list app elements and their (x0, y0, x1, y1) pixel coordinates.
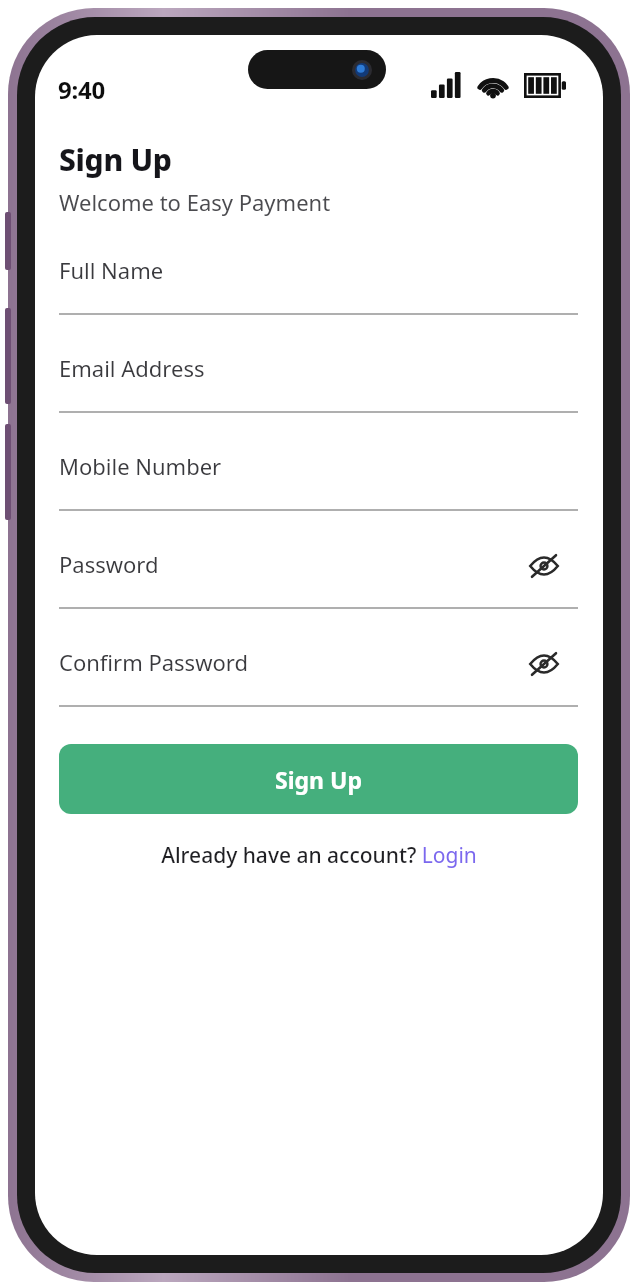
staticText: Full Name (59, 255, 164, 285)
button[interactable]: Toggle password visibility (521, 543, 567, 589)
staticText: Password (59, 549, 159, 579)
button[interactable]: Confirm Password (59, 639, 578, 705)
button[interactable]: Email Address (59, 345, 578, 411)
staticText: Sign Up (275, 764, 362, 795)
button[interactable]: Sign Up (59, 744, 578, 814)
staticText: Already have an account? Login (161, 841, 477, 870)
staticText: 9:40 (58, 73, 106, 106)
staticText: Mobile Number (59, 451, 222, 481)
staticText: Sign Up (59, 139, 172, 180)
button[interactable]: Password (59, 541, 578, 607)
staticText: Confirm Password (59, 647, 248, 677)
staticText: Email Address (59, 353, 205, 383)
button[interactable]: Full Name (59, 247, 578, 313)
staticText: Welcome to Easy Payment (59, 187, 331, 217)
button[interactable]: Mobile Number (59, 443, 578, 509)
button[interactable]: Toggle password visibility (521, 641, 567, 687)
button[interactable]: Already have an account? Login (59, 835, 578, 875)
